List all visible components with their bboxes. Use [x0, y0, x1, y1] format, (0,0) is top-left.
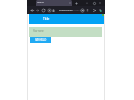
- staticText: localhost:8080: [59, 9, 73, 12]
- staticText: Your name: [33, 29, 44, 32]
- button[interactable]: Sample App: [36, 0, 72, 6]
- button[interactable]: SAY HELLO: [30, 37, 51, 43]
- button[interactable]: New tab: [75, 2, 78, 5]
- button[interactable]: Back: [30, 8, 35, 13]
- button[interactable]: Maximize: [93, 2, 96, 5]
- button[interactable]: Share: [92, 8, 97, 13]
- staticText: Sample App: [37, 2, 44, 4]
- staticText: SAY HELLO: [35, 38, 46, 42]
- button[interactable]: Reload: [41, 8, 46, 13]
- button[interactable]: Your name: [33, 29, 63, 32]
- button[interactable]: Site information: [51, 8, 56, 13]
- button[interactable]: Minimize: [86, 2, 88, 4]
- button[interactable]: Extensions: [80, 8, 85, 13]
- button[interactable]: Forward: [35, 8, 40, 13]
- button[interactable]: Account: [85, 8, 90, 13]
- staticText: /index.html: [73, 9, 84, 12]
- button[interactable]: Online status: [102, 14, 104, 16]
- button[interactable]: Menu: [98, 8, 103, 13]
- button[interactable]: Tracking protection: [47, 8, 52, 13]
- staticText: Title: [43, 17, 50, 21]
